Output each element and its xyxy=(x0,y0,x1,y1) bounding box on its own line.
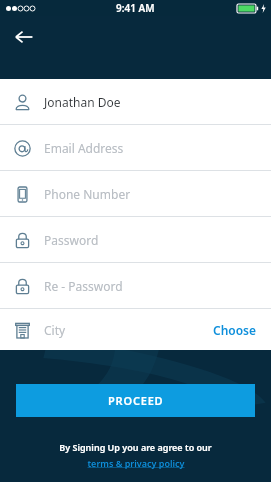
staticText: Password xyxy=(44,232,99,248)
staticText: PROCEED xyxy=(108,393,164,408)
staticText: Phone Number xyxy=(44,186,131,202)
staticText: 9:41 AM xyxy=(116,1,155,15)
staticText: Jonathan Doe xyxy=(44,94,121,110)
button[interactable]: PROCEED xyxy=(16,384,255,417)
staticText: Email Address xyxy=(44,140,124,156)
staticText: terms & privacy policy xyxy=(87,457,185,469)
staticText: Choose xyxy=(213,322,257,338)
staticText: By Signing Up you are agree to our xyxy=(59,441,212,453)
button[interactable]: Password xyxy=(0,217,271,262)
button[interactable]: Choose xyxy=(211,318,259,342)
button[interactable]: City xyxy=(0,309,271,350)
button[interactable]: Phone Number xyxy=(0,171,271,216)
staticText: City xyxy=(44,322,66,338)
staticText: Re - Password xyxy=(44,278,123,294)
button[interactable]: Back xyxy=(6,19,42,55)
button[interactable]: Re - Password xyxy=(0,263,271,308)
button[interactable]: Jonathan Doe xyxy=(0,79,271,124)
button[interactable]: Email Address xyxy=(0,125,271,170)
button[interactable]: terms & privacy policy xyxy=(83,456,189,470)
